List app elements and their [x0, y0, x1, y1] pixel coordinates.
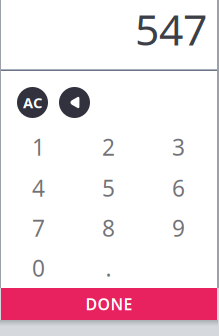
button[interactable]: Delete — [59, 87, 90, 118]
staticText: 4 — [32, 173, 45, 203]
button[interactable]: DONE — [1, 288, 217, 320]
staticText: 547 — [135, 1, 207, 57]
staticText: 6 — [172, 173, 185, 203]
button[interactable]: 2 — [73, 127, 143, 167]
staticText: 1 — [32, 132, 45, 162]
staticText: AC — [23, 93, 42, 112]
staticText: 7 — [32, 213, 45, 243]
button[interactable]: 0 — [3, 248, 73, 288]
button[interactable]: AC — [17, 87, 48, 118]
staticText: 2 — [102, 132, 115, 162]
button[interactable]: 3 — [143, 127, 213, 167]
staticText: . — [105, 253, 111, 283]
button[interactable]: 4 — [3, 168, 73, 208]
staticText: 5 — [102, 173, 115, 203]
staticText: 8 — [102, 213, 115, 243]
staticText: 9 — [172, 213, 185, 243]
button[interactable]: 7 — [3, 208, 73, 248]
button[interactable]: 8 — [73, 208, 143, 248]
button[interactable]: 6 — [143, 168, 213, 208]
button[interactable]: 1 — [3, 127, 73, 167]
staticText: 0 — [32, 253, 45, 283]
staticText: DONE — [85, 293, 132, 315]
button[interactable]: 5 — [73, 168, 143, 208]
button[interactable]: 9 — [143, 208, 213, 248]
button[interactable]: . — [73, 248, 143, 288]
staticText: 3 — [172, 132, 185, 162]
